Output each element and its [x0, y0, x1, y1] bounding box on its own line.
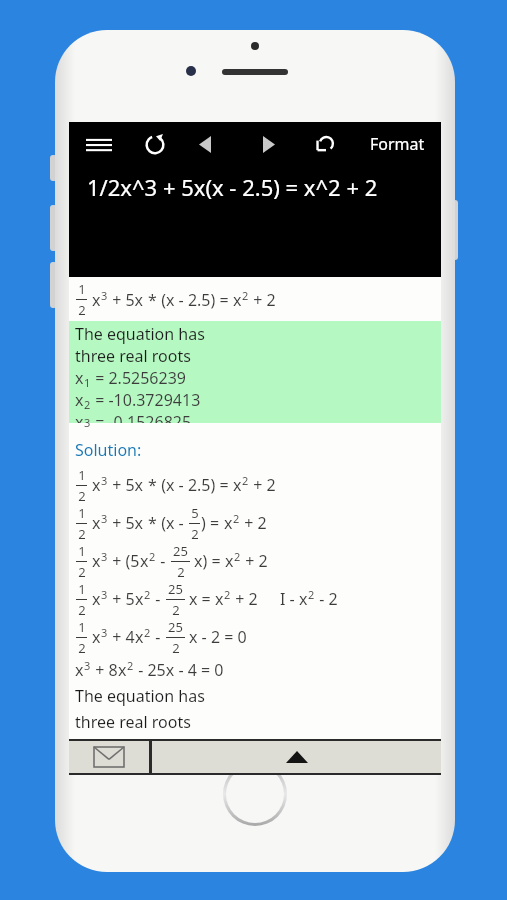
staticText: x	[92, 588, 101, 610]
staticText: 3	[101, 549, 108, 564]
button[interactable]: Undo	[303, 122, 347, 166]
button[interactable]: Format	[364, 125, 431, 163]
staticText: 2	[78, 301, 86, 319]
staticText: 1	[78, 504, 86, 522]
staticText: 2	[127, 658, 134, 673]
staticText: 25	[168, 580, 183, 598]
staticText: 1	[78, 618, 86, 636]
staticText: x	[215, 588, 224, 610]
staticText: x	[75, 659, 84, 681]
staticText: 2	[172, 639, 180, 656]
staticText: 2	[149, 549, 156, 564]
button[interactable]: Refresh	[133, 122, 177, 166]
staticText: 25	[168, 618, 183, 636]
staticText: 1	[78, 466, 86, 484]
staticText: 1	[84, 375, 91, 390]
staticText: + 2	[249, 289, 276, 311]
button[interactable]: Scroll up	[152, 741, 441, 773]
staticText: 2	[233, 511, 240, 526]
staticText: x	[75, 389, 84, 411]
staticText: x) =	[194, 550, 225, 572]
button[interactable]: Next	[249, 124, 289, 164]
staticText: 2	[242, 288, 249, 303]
staticText: 3	[101, 511, 108, 526]
staticText: Solution:	[75, 439, 142, 461]
staticText: x	[135, 588, 144, 610]
staticText: + 8	[91, 659, 118, 681]
staticText: (x -	[157, 512, 188, 534]
staticText: 3	[84, 415, 91, 427]
staticText: 2	[191, 525, 199, 542]
staticText: x	[299, 588, 308, 610]
staticText: x	[92, 289, 101, 311]
staticText: x	[92, 474, 101, 496]
staticText: x	[233, 474, 242, 496]
staticText: = -0.1526825	[91, 411, 192, 423]
button[interactable]: Email result	[69, 741, 149, 773]
staticText: 2	[144, 625, 151, 640]
button[interactable]: Menu	[77, 122, 121, 166]
staticText: 2	[177, 563, 185, 580]
staticText: The equation has	[75, 323, 205, 345]
staticText: 1	[78, 280, 86, 298]
staticText: 2	[224, 587, 231, 602]
staticText: 3	[101, 587, 108, 602]
staticText: 1	[78, 580, 86, 598]
staticText: 1	[78, 542, 86, 560]
staticText: + 2	[231, 588, 258, 610]
staticText: *	[148, 474, 157, 496]
staticText: 3	[101, 473, 108, 488]
staticText: x	[75, 411, 84, 423]
staticText: x	[92, 550, 101, 572]
staticText: + 5x	[108, 474, 148, 496]
staticText: three real roots	[75, 345, 191, 367]
staticText: + 5	[108, 588, 135, 610]
staticText: + 5x	[108, 512, 148, 534]
staticText: I -	[280, 588, 299, 610]
staticText: x	[225, 550, 234, 572]
staticText: = -10.3729413	[91, 389, 201, 411]
staticText: 2	[84, 397, 91, 412]
staticText: + 2	[249, 474, 276, 496]
staticText: (x - 2.5) =	[157, 474, 233, 496]
staticText: x	[92, 512, 101, 534]
staticText: (x - 2.5) =	[157, 289, 233, 311]
staticText: 2	[144, 587, 151, 602]
staticText: x - 2 = 0	[189, 626, 247, 648]
staticText: + 4	[108, 626, 135, 648]
staticText: 2	[78, 601, 86, 618]
staticText: 2	[234, 549, 241, 564]
staticText: = 2.5256239	[91, 367, 186, 389]
staticText: 1/2x^3 + 5x(x - 2.5) = x^2 + 2	[87, 172, 378, 202]
staticText: 2	[242, 473, 249, 488]
button[interactable]: Previous	[185, 124, 225, 164]
staticText: x	[135, 626, 144, 648]
button[interactable]: Home	[223, 762, 287, 826]
staticText: *	[148, 289, 157, 311]
staticText: 3	[101, 288, 108, 303]
staticText: x	[92, 626, 101, 648]
staticText: -	[156, 550, 170, 572]
staticText: 2	[78, 563, 86, 580]
staticText: - 25x - 4 = 0	[134, 659, 224, 681]
staticText: x =	[189, 588, 215, 610]
staticText: + 2	[240, 512, 267, 534]
staticText: 5	[191, 504, 199, 522]
staticText: + 5x	[108, 289, 148, 311]
staticText: ) =	[201, 512, 224, 534]
staticText: 2	[78, 487, 86, 504]
staticText: The equation has	[75, 685, 205, 707]
staticText: 3	[84, 658, 91, 673]
staticText: - 2	[315, 588, 338, 610]
staticText: 2	[78, 525, 86, 542]
staticText: 2	[172, 601, 180, 618]
staticText: -	[151, 588, 165, 610]
staticText: x	[118, 659, 127, 681]
staticText: + (5	[108, 550, 140, 572]
staticText: x	[224, 512, 233, 534]
staticText: *	[148, 512, 157, 534]
staticText: 2	[308, 587, 315, 602]
staticText: + 2	[241, 550, 268, 572]
staticText: x	[140, 550, 149, 572]
